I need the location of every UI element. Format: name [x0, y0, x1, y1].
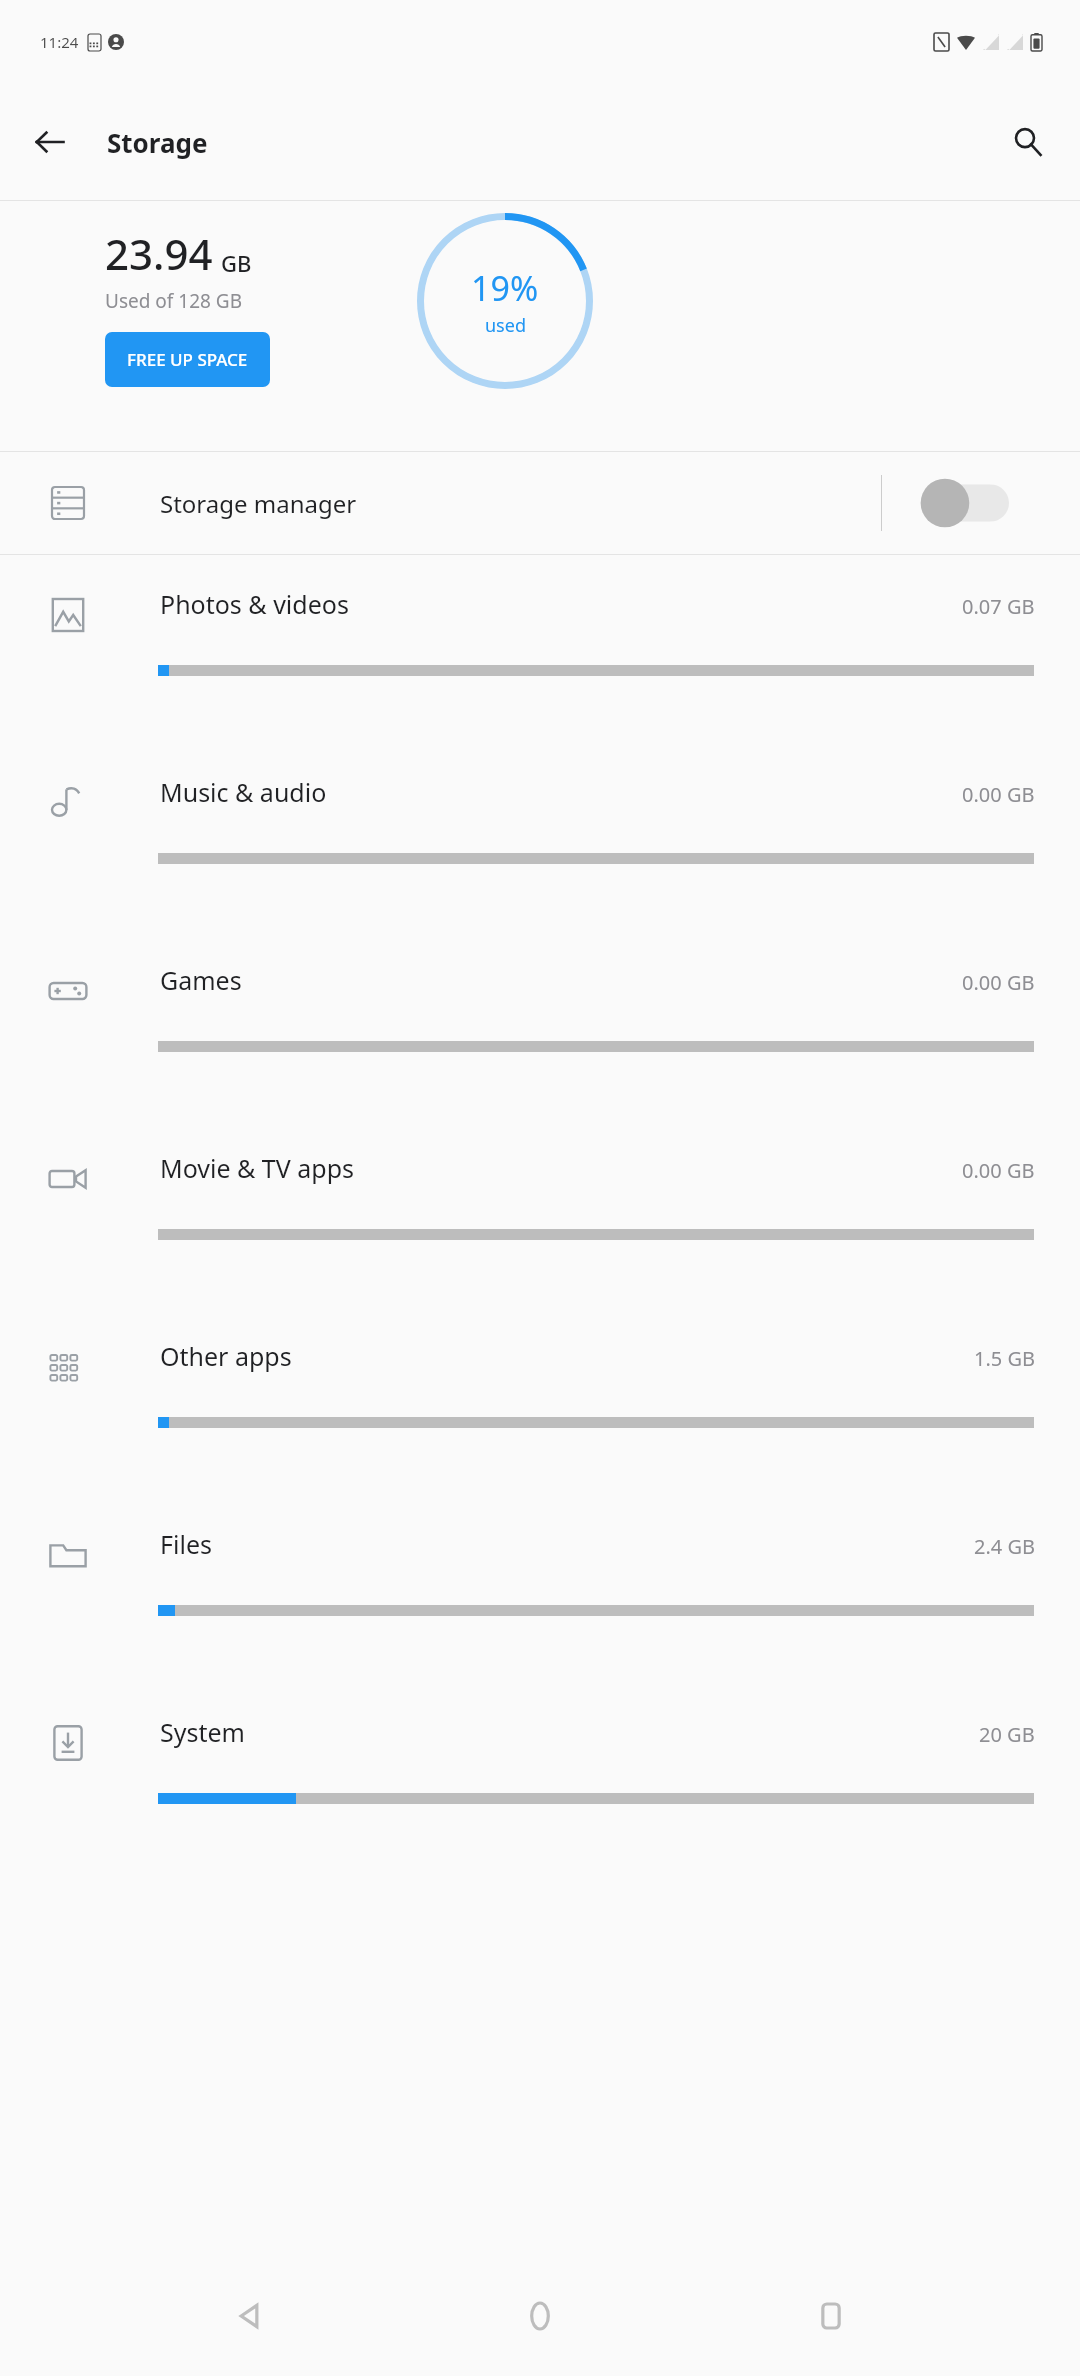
- staticText: 2.4 GB: [974, 1533, 1035, 1560]
- staticText: Used of 128 GB: [105, 288, 243, 314]
- button[interactable]: Photos & videos: [0, 555, 1080, 743]
- staticText: used: [485, 313, 526, 338]
- staticText: Movie & TV apps: [160, 1151, 355, 1185]
- button[interactable]: Storage manager toggle: [910, 471, 1020, 535]
- button[interactable]: Back: [16, 108, 84, 176]
- button[interactable]: Home: [498, 2274, 582, 2358]
- button[interactable]: Music & audio: [0, 743, 1080, 931]
- staticText: 20 GB: [979, 1721, 1035, 1748]
- button[interactable]: Storage manager: [0, 452, 1080, 554]
- staticText: System: [160, 1715, 245, 1749]
- staticText: Music & audio: [160, 775, 327, 809]
- staticText: 11:24: [40, 32, 79, 52]
- staticText: Storage: [107, 125, 208, 160]
- staticText: Photos & videos: [160, 587, 349, 621]
- button[interactable]: FREE UP SPACE: [105, 332, 270, 387]
- button[interactable]: Search: [994, 108, 1062, 176]
- button[interactable]: Games: [0, 931, 1080, 1119]
- staticText: GB: [221, 248, 252, 278]
- button[interactable]: Other apps: [0, 1307, 1080, 1495]
- staticText: 0.00 GB: [962, 781, 1035, 808]
- button[interactable]: Movie & TV apps: [0, 1119, 1080, 1307]
- staticText: Files: [160, 1527, 212, 1561]
- button[interactable]: System: [0, 1683, 1080, 1871]
- button[interactable]: Recents: [789, 2274, 873, 2358]
- staticText: Games: [160, 963, 242, 997]
- staticText: Storage manager: [160, 487, 357, 520]
- staticText: 1.5 GB: [974, 1345, 1035, 1372]
- staticText: 0.07 GB: [962, 593, 1035, 620]
- staticText: FREE UP SPACE: [127, 348, 248, 371]
- staticText: 0.00 GB: [962, 969, 1035, 996]
- staticText: 23.94: [105, 225, 213, 282]
- staticText: 19%: [471, 265, 539, 311]
- staticText: 0.00 GB: [962, 1157, 1035, 1184]
- staticText: Other apps: [160, 1339, 292, 1373]
- button[interactable]: Back: [207, 2274, 291, 2358]
- button[interactable]: Files: [0, 1495, 1080, 1683]
